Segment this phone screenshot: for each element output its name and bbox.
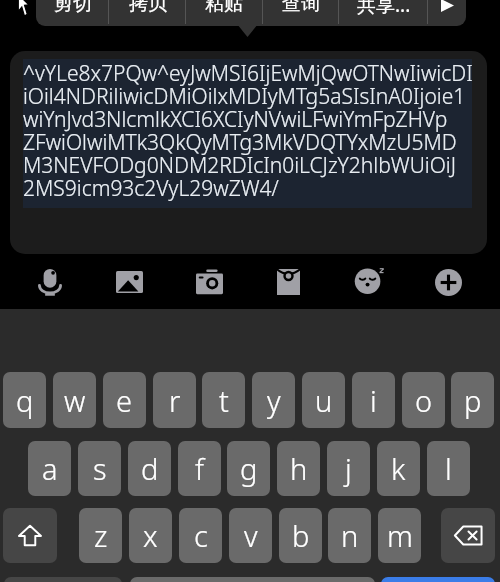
- staticText: v: [244, 516, 258, 555]
- button[interactable]: o: [402, 372, 445, 428]
- button[interactable]: j: [327, 441, 370, 496]
- button[interactable]: t: [202, 372, 245, 428]
- button[interactable]: d: [128, 441, 171, 496]
- staticText: p: [464, 381, 482, 420]
- staticText: j: [345, 449, 352, 488]
- button[interactable]: Voice input: [26, 262, 74, 302]
- button[interactable]: p: [451, 372, 494, 428]
- button[interactable]: More: [424, 262, 472, 302]
- button[interactable]: s: [78, 441, 121, 496]
- button[interactable]: e: [103, 372, 146, 428]
- staticText: l: [445, 449, 452, 488]
- staticText: i: [370, 381, 377, 420]
- button[interactable]: Enter: [381, 577, 495, 582]
- staticText: e: [116, 381, 133, 420]
- staticText: 粘贴: [205, 0, 243, 16]
- staticText: t: [219, 381, 229, 420]
- button[interactable]: 拷贝: [109, 0, 186, 26]
- button[interactable]: v: [229, 508, 272, 563]
- staticText: u: [315, 381, 333, 420]
- staticText: 拷贝: [129, 0, 167, 16]
- button[interactable]: u: [302, 372, 345, 428]
- staticText: c: [194, 516, 208, 555]
- staticText: 共享...: [357, 0, 411, 18]
- staticText: 剪切: [54, 0, 92, 16]
- button[interactable]: g: [227, 441, 270, 496]
- button[interactable]: More actions: [428, 0, 466, 26]
- button[interactable]: x: [129, 508, 172, 563]
- button[interactable]: Backspace: [441, 508, 495, 563]
- staticText: r: [169, 381, 181, 420]
- button[interactable]: Symbols: [4, 577, 122, 582]
- staticText: a: [42, 449, 58, 488]
- button[interactable]: Gallery: [105, 262, 153, 302]
- staticText: o: [415, 381, 433, 420]
- button[interactable]: i: [352, 372, 395, 428]
- staticText: f: [195, 449, 204, 488]
- staticText: h: [290, 449, 308, 488]
- staticText: b: [292, 516, 310, 555]
- button[interactable]: b: [279, 508, 322, 563]
- button[interactable]: Red packet: [264, 262, 312, 302]
- button[interactable]: z: [79, 508, 122, 563]
- staticText: n: [341, 516, 359, 555]
- button[interactable]: Camera: [185, 262, 233, 302]
- button[interactable]: 剪切: [36, 0, 109, 26]
- button[interactable]: Space: [130, 577, 375, 582]
- button[interactable]: y: [252, 372, 295, 428]
- button[interactable]: f: [178, 441, 221, 496]
- staticText: m: [387, 516, 413, 555]
- staticText: d: [141, 449, 159, 488]
- staticText: ^vYLe8x7PQw^eyJwMSI6IjEwMjQwOTNwIiwicDI …: [23, 59, 487, 202]
- button[interactable]: Shift: [3, 508, 57, 563]
- button[interactable]: c: [179, 508, 222, 563]
- button[interactable]: n: [328, 508, 371, 563]
- staticText: z: [94, 516, 108, 555]
- staticText: q: [16, 381, 34, 420]
- staticText: y: [267, 381, 281, 420]
- button[interactable]: 共享...: [339, 0, 428, 26]
- button[interactable]: 粘贴: [186, 0, 262, 26]
- button[interactable]: a: [28, 441, 71, 496]
- staticText: w: [64, 381, 86, 420]
- button[interactable]: ^vYLe8x7PQw^eyJwMSI6IjEwMjQwOTNwIiwicDI …: [10, 51, 487, 254]
- button[interactable]: l: [427, 441, 470, 496]
- staticText: s: [93, 449, 107, 488]
- button[interactable]: m: [378, 508, 421, 563]
- button[interactable]: h: [277, 441, 320, 496]
- staticText: g: [240, 449, 258, 488]
- staticText: k: [391, 449, 406, 488]
- button[interactable]: q: [3, 372, 46, 428]
- button[interactable]: w: [53, 372, 96, 428]
- button[interactable]: k: [377, 441, 420, 496]
- staticText: 查询: [282, 0, 320, 16]
- button[interactable]: r: [153, 372, 196, 428]
- button[interactable]: Emoji: [345, 262, 393, 302]
- staticText: x: [143, 516, 158, 555]
- button[interactable]: 查询: [262, 0, 339, 26]
